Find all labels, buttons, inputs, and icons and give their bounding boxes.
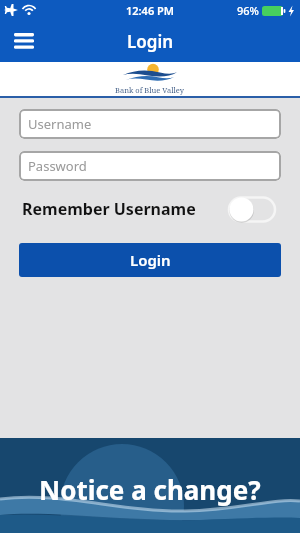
- button[interactable]: [229, 197, 275, 222]
- button[interactable]: Login: [19, 243, 281, 277]
- staticText: Remember Username: [22, 198, 196, 220]
- staticText: Password: [28, 157, 87, 175]
- button[interactable]: Notice a change?: [0, 438, 300, 533]
- button[interactable]: [8, 25, 40, 57]
- staticText: 96%: [237, 3, 259, 18]
- staticText: Login: [127, 30, 174, 53]
- staticText: Login: [130, 250, 171, 270]
- staticText: 12:46 PM: [126, 3, 175, 18]
- staticText: Bank of Blue Valley: [115, 85, 185, 95]
- staticText: Username: [28, 115, 92, 133]
- button[interactable]: Remember Username: [19, 196, 281, 222]
- button[interactable]: Username: [19, 109, 281, 139]
- staticText: Notice a change?: [39, 472, 261, 507]
- button[interactable]: Password: [19, 151, 281, 181]
